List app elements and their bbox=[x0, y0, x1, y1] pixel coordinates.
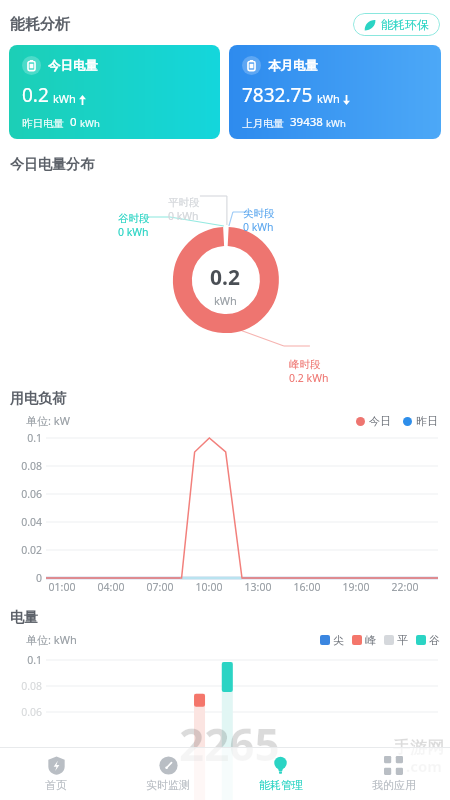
staticText: 首页 bbox=[45, 778, 67, 792]
staticText: 峰时段 bbox=[289, 358, 321, 371]
staticText: 0 bbox=[70, 114, 77, 130]
staticText: 2265 bbox=[179, 714, 280, 774]
staticText: 13:00 bbox=[238, 580, 278, 594]
staticText: 0.08 bbox=[0, 459, 42, 473]
staticText: 0 kWh bbox=[168, 209, 199, 223]
staticText: 谷时段 bbox=[118, 212, 150, 225]
staticText: 今日 bbox=[369, 414, 391, 428]
staticText: 用电负荷 bbox=[10, 390, 66, 408]
button[interactable]: 我的应用 bbox=[337, 748, 450, 800]
staticText: 能耗分析 bbox=[10, 15, 70, 34]
staticText: 19:00 bbox=[336, 580, 376, 594]
staticText: 0.1 bbox=[0, 653, 42, 667]
staticText: kWh bbox=[80, 117, 100, 130]
button[interactable]: 今日电量 bbox=[9, 45, 220, 139]
staticText: 0.04 bbox=[0, 515, 42, 529]
staticText: 峰 bbox=[365, 633, 376, 647]
staticText: 0.06 bbox=[0, 705, 42, 719]
staticText: 0.1 bbox=[0, 431, 42, 445]
staticText: 0.2 bbox=[22, 82, 49, 108]
staticText: 7832.75 bbox=[242, 82, 313, 108]
staticText: 平 bbox=[397, 633, 408, 647]
staticText: kWh bbox=[53, 91, 76, 106]
staticText: 0 kWh bbox=[243, 220, 274, 234]
staticText: 0.2 bbox=[210, 263, 240, 292]
staticText: 我的应用 bbox=[372, 778, 416, 792]
staticText: 电量 bbox=[10, 609, 38, 627]
staticText: 10:00 bbox=[189, 580, 229, 594]
staticText: 昨日电量 bbox=[22, 117, 64, 130]
button[interactable]: 能耗环保 bbox=[353, 13, 440, 36]
staticText: 07:00 bbox=[140, 580, 180, 594]
staticText: 0.08 bbox=[0, 679, 42, 693]
staticText: 单位: kWh bbox=[26, 632, 77, 647]
staticText: 39438 bbox=[290, 114, 323, 130]
staticText: 01:00 bbox=[42, 580, 82, 594]
staticText: 0.06 bbox=[0, 487, 42, 501]
staticText: 今日电量 bbox=[48, 58, 98, 74]
staticText: 0.2 kWh bbox=[289, 371, 329, 385]
staticText: 0 kWh bbox=[118, 225, 149, 239]
staticText: 能耗环保 bbox=[381, 17, 429, 32]
staticText: 平时段 bbox=[168, 196, 200, 209]
staticText: kWh bbox=[214, 293, 237, 308]
staticText: 16:00 bbox=[287, 580, 327, 594]
staticText: 04:00 bbox=[91, 580, 131, 594]
staticText: 实时监测 bbox=[146, 778, 190, 792]
button[interactable]: 能耗管理 bbox=[224, 748, 337, 800]
staticText: 0 bbox=[0, 571, 42, 585]
staticText: 尖时段 bbox=[243, 207, 275, 220]
staticText: 谷 bbox=[429, 633, 440, 647]
staticText: 本月电量 bbox=[268, 58, 318, 74]
staticText: .com bbox=[406, 756, 442, 776]
button[interactable]: 实时监测 bbox=[112, 748, 224, 800]
staticText: 尖 bbox=[333, 633, 344, 647]
staticText: kWh bbox=[326, 117, 346, 130]
button[interactable]: 首页 bbox=[0, 748, 112, 800]
staticText: 能耗管理 bbox=[259, 778, 303, 792]
button[interactable]: 本月电量 bbox=[229, 45, 441, 139]
staticText: 22:00 bbox=[385, 580, 425, 594]
staticText: 0.02 bbox=[0, 543, 42, 557]
staticText: 昨日 bbox=[416, 414, 438, 428]
staticText: 上月电量 bbox=[242, 117, 284, 130]
staticText: 今日电量分布 bbox=[10, 156, 94, 174]
staticText: kWh bbox=[317, 91, 340, 106]
staticText: 单位: kW bbox=[26, 413, 70, 428]
staticText: 手游网 bbox=[393, 737, 444, 758]
